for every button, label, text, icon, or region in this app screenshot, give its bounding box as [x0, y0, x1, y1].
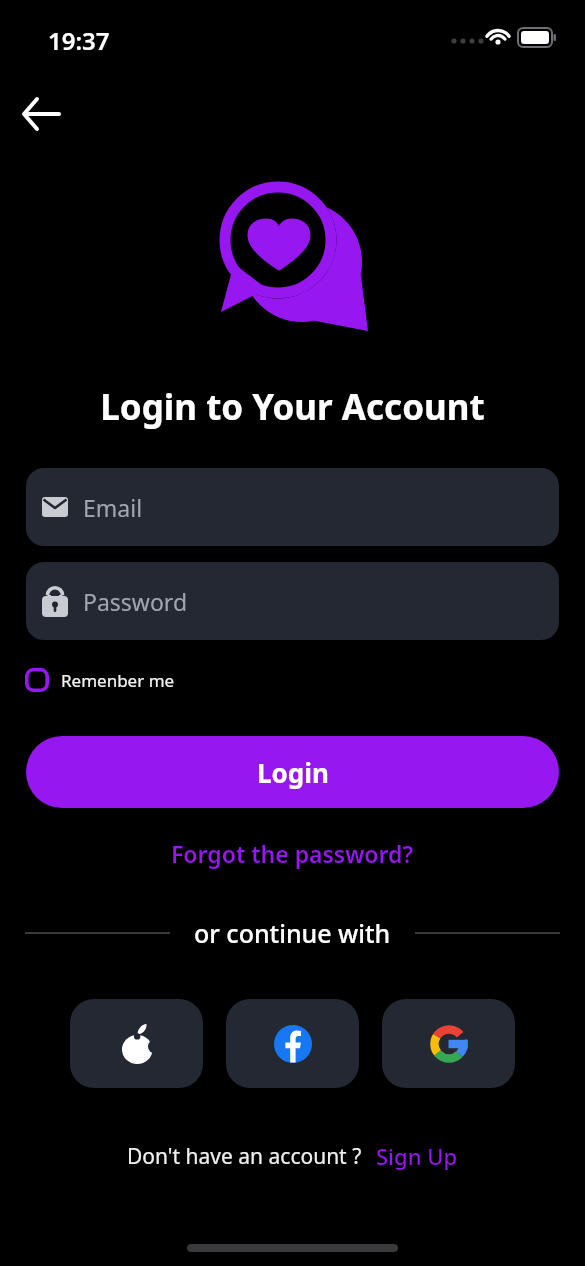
staticText: Remenber me [61, 669, 175, 692]
button[interactable] [14, 86, 70, 142]
button[interactable]: Sign Up [376, 1141, 458, 1171]
button[interactable]: Password [26, 562, 559, 640]
staticText: Password [83, 586, 188, 617]
staticText: Login to Your Account [0, 383, 585, 431]
staticText: Email [83, 492, 143, 523]
staticText: Sign Up [376, 1141, 458, 1171]
staticText: Login [257, 755, 329, 790]
button[interactable]: Email [26, 468, 559, 546]
button[interactable]: Login [26, 736, 559, 808]
button[interactable]: Remenber me [25, 668, 175, 692]
button[interactable]: Forgot the password? [171, 838, 414, 869]
staticText: 19:37 [48, 24, 110, 57]
button[interactable] [70, 999, 203, 1088]
staticText: Don't have an account ? [127, 1142, 362, 1171]
staticText: or continue with [194, 916, 391, 950]
button[interactable] [382, 999, 515, 1088]
staticText: Forgot the password? [171, 838, 414, 869]
button[interactable] [226, 999, 359, 1088]
